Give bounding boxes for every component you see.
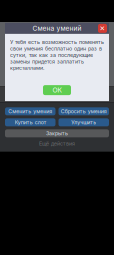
staticText: Маска — [75, 28, 92, 34]
staticText: Амулет — [21, 46, 40, 53]
staticText: Смена умений — [32, 24, 81, 32]
staticText: ОК — [52, 86, 61, 94]
button[interactable]: Закрыть — [5, 129, 109, 137]
button[interactable]: Купить слот — [5, 118, 55, 126]
staticText: Улучшить — [71, 119, 96, 126]
staticText: Выбрать — [73, 36, 95, 43]
staticText: Выбрать — [19, 36, 41, 43]
button[interactable]: Улучшить — [58, 118, 109, 126]
button[interactable]: Сбросить умения — [58, 107, 109, 115]
staticText: У тебя есть возможность поменять свои ум… — [10, 39, 104, 71]
button[interactable]: Активировать — [58, 54, 109, 62]
button[interactable]: ОК — [43, 85, 71, 95]
button[interactable]: Выбрать — [58, 35, 109, 43]
staticText: Ещё действия — [39, 140, 75, 147]
button[interactable]: Выбрать — [5, 35, 55, 43]
staticText: Сменить умения — [8, 108, 52, 115]
button[interactable]: Закрыть — [98, 24, 107, 33]
staticText: Купить слот — [15, 119, 46, 126]
staticText: Закрыть — [46, 130, 68, 137]
staticText: ✕ — [99, 24, 105, 32]
staticText: Зелье — [23, 28, 38, 34]
staticText: Активировать — [12, 55, 49, 61]
button[interactable]: Активировать — [5, 54, 55, 62]
staticText: Сбросить умения — [61, 108, 107, 115]
staticText: Кольцо — [75, 46, 93, 53]
staticText: Активировать — [65, 55, 102, 61]
staticText: Умения и снаряжение — [28, 65, 85, 71]
button[interactable]: Сменить умения — [5, 107, 55, 115]
